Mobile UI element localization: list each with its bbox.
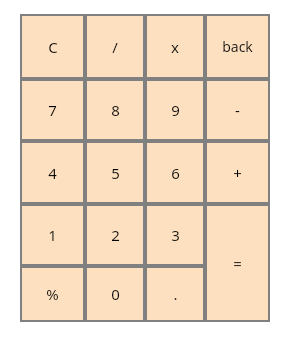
staticText: .	[173, 284, 178, 304]
button[interactable]: 7	[20, 79, 85, 141]
button[interactable]: 8	[85, 79, 145, 141]
button[interactable]: .	[145, 266, 205, 322]
staticText: x	[171, 37, 179, 57]
button[interactable]: x	[145, 14, 205, 79]
staticText: 2	[111, 225, 120, 245]
staticText: 6	[171, 163, 180, 183]
button[interactable]: %	[20, 266, 85, 322]
staticText: 7	[48, 100, 57, 120]
staticText: 5	[111, 163, 120, 183]
staticText: 1	[48, 225, 57, 245]
button[interactable]: -	[205, 79, 270, 141]
button[interactable]: +	[205, 141, 270, 204]
staticText: C	[48, 37, 58, 57]
staticText: 8	[111, 100, 120, 120]
button[interactable]: =	[205, 204, 270, 322]
button[interactable]: 5	[85, 141, 145, 204]
staticText: %	[46, 284, 59, 304]
staticText: 4	[48, 163, 57, 183]
staticText: 0	[111, 284, 120, 304]
button[interactable]: /	[85, 14, 145, 79]
button[interactable]: back	[205, 14, 270, 79]
button[interactable]: 9	[145, 79, 205, 141]
button[interactable]: 1	[20, 204, 85, 266]
staticText: back	[222, 37, 253, 56]
button[interactable]: C	[20, 14, 85, 79]
staticText: 3	[171, 225, 180, 245]
staticText: +	[233, 163, 242, 183]
button[interactable]: 2	[85, 204, 145, 266]
button[interactable]: 6	[145, 141, 205, 204]
staticText: 9	[171, 100, 180, 120]
staticText: /	[112, 37, 118, 57]
button[interactable]: 0	[85, 266, 145, 322]
staticText: =	[233, 253, 242, 273]
button[interactable]: 4	[20, 141, 85, 204]
button[interactable]: 3	[145, 204, 205, 266]
staticText: -	[235, 100, 240, 120]
